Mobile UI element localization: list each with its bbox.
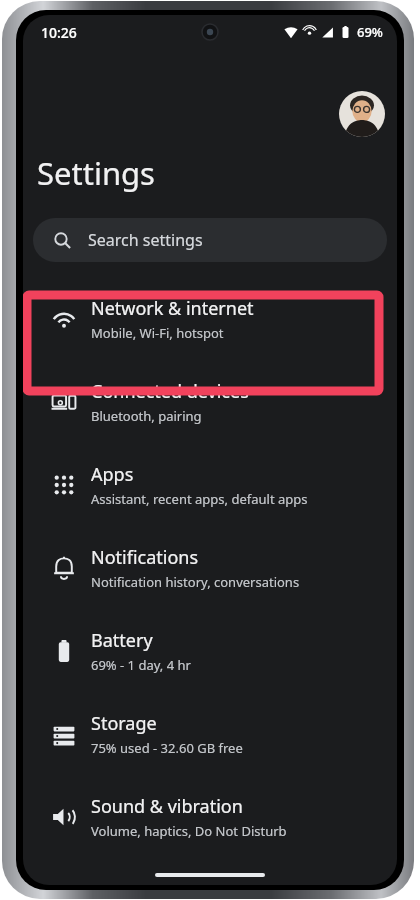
button[interactable]: Battery <box>23 609 397 692</box>
staticText: 75% used - 32.60 GB free <box>91 739 243 757</box>
staticText: Bluetooth, pairing <box>91 407 202 425</box>
staticText: Settings <box>37 152 155 194</box>
staticText: 10:26 <box>41 23 77 42</box>
staticText: Sound & vibration <box>91 794 243 819</box>
staticText: Apps <box>91 462 134 487</box>
staticText: Connected devices <box>91 379 249 404</box>
button[interactable]: Search settings <box>33 218 387 262</box>
button[interactable]: Sound & vibration <box>23 775 397 858</box>
staticText: 69% - 1 day, 4 hr <box>91 656 191 674</box>
staticText: Search settings <box>88 229 203 251</box>
staticText: Volume, haptics, Do Not Disturb <box>91 822 287 840</box>
button[interactable]: Storage <box>23 692 397 775</box>
button[interactable]: Connected devices <box>23 360 397 443</box>
staticText: Storage <box>91 711 157 736</box>
button[interactable]: Network & internet <box>23 277 397 360</box>
staticText: Battery <box>91 628 153 653</box>
button[interactable]: Apps <box>23 443 397 526</box>
staticText: Mobile, Wi-Fi, hotspot <box>91 324 224 342</box>
staticText: Network & internet <box>91 296 254 321</box>
button[interactable]: Notifications <box>23 526 397 609</box>
staticText: Notifications <box>91 545 199 570</box>
button[interactable]: Account <box>339 91 385 137</box>
staticText: 69% <box>357 23 383 41</box>
staticText: Assistant, recent apps, default apps <box>91 490 308 508</box>
staticText: Notification history, conversations <box>91 573 300 591</box>
